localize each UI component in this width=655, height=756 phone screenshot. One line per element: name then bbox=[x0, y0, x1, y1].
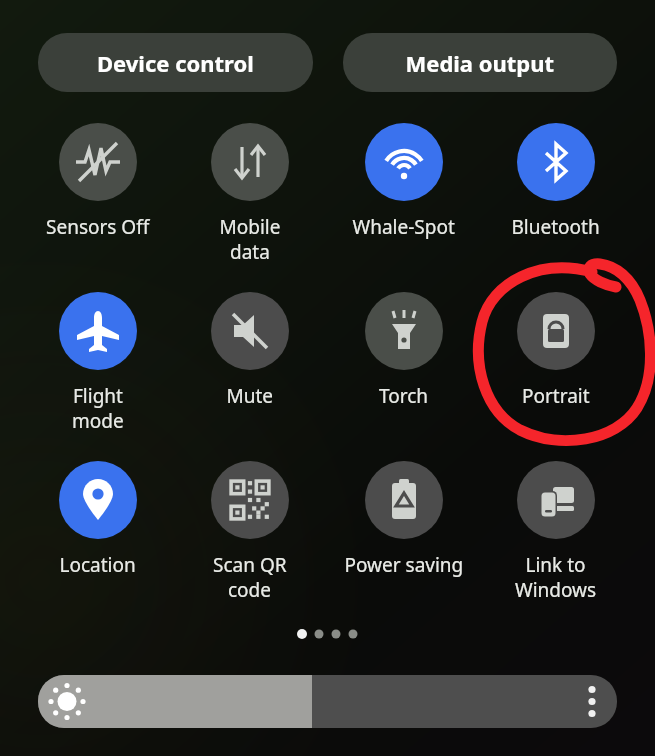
button[interactable]: Brightness bbox=[38, 675, 617, 728]
button[interactable] bbox=[22, 116, 174, 238]
button[interactable] bbox=[174, 116, 326, 238]
button[interactable] bbox=[328, 285, 480, 407]
button[interactable] bbox=[38, 33, 313, 92]
button[interactable] bbox=[343, 33, 617, 92]
button[interactable] bbox=[22, 454, 174, 576]
button[interactable] bbox=[328, 116, 480, 238]
button[interactable] bbox=[174, 285, 326, 407]
button[interactable] bbox=[480, 454, 632, 576]
button[interactable] bbox=[328, 454, 480, 576]
button[interactable] bbox=[22, 285, 174, 407]
button[interactable] bbox=[480, 285, 632, 407]
button[interactable] bbox=[480, 116, 632, 238]
button[interactable] bbox=[174, 454, 326, 576]
